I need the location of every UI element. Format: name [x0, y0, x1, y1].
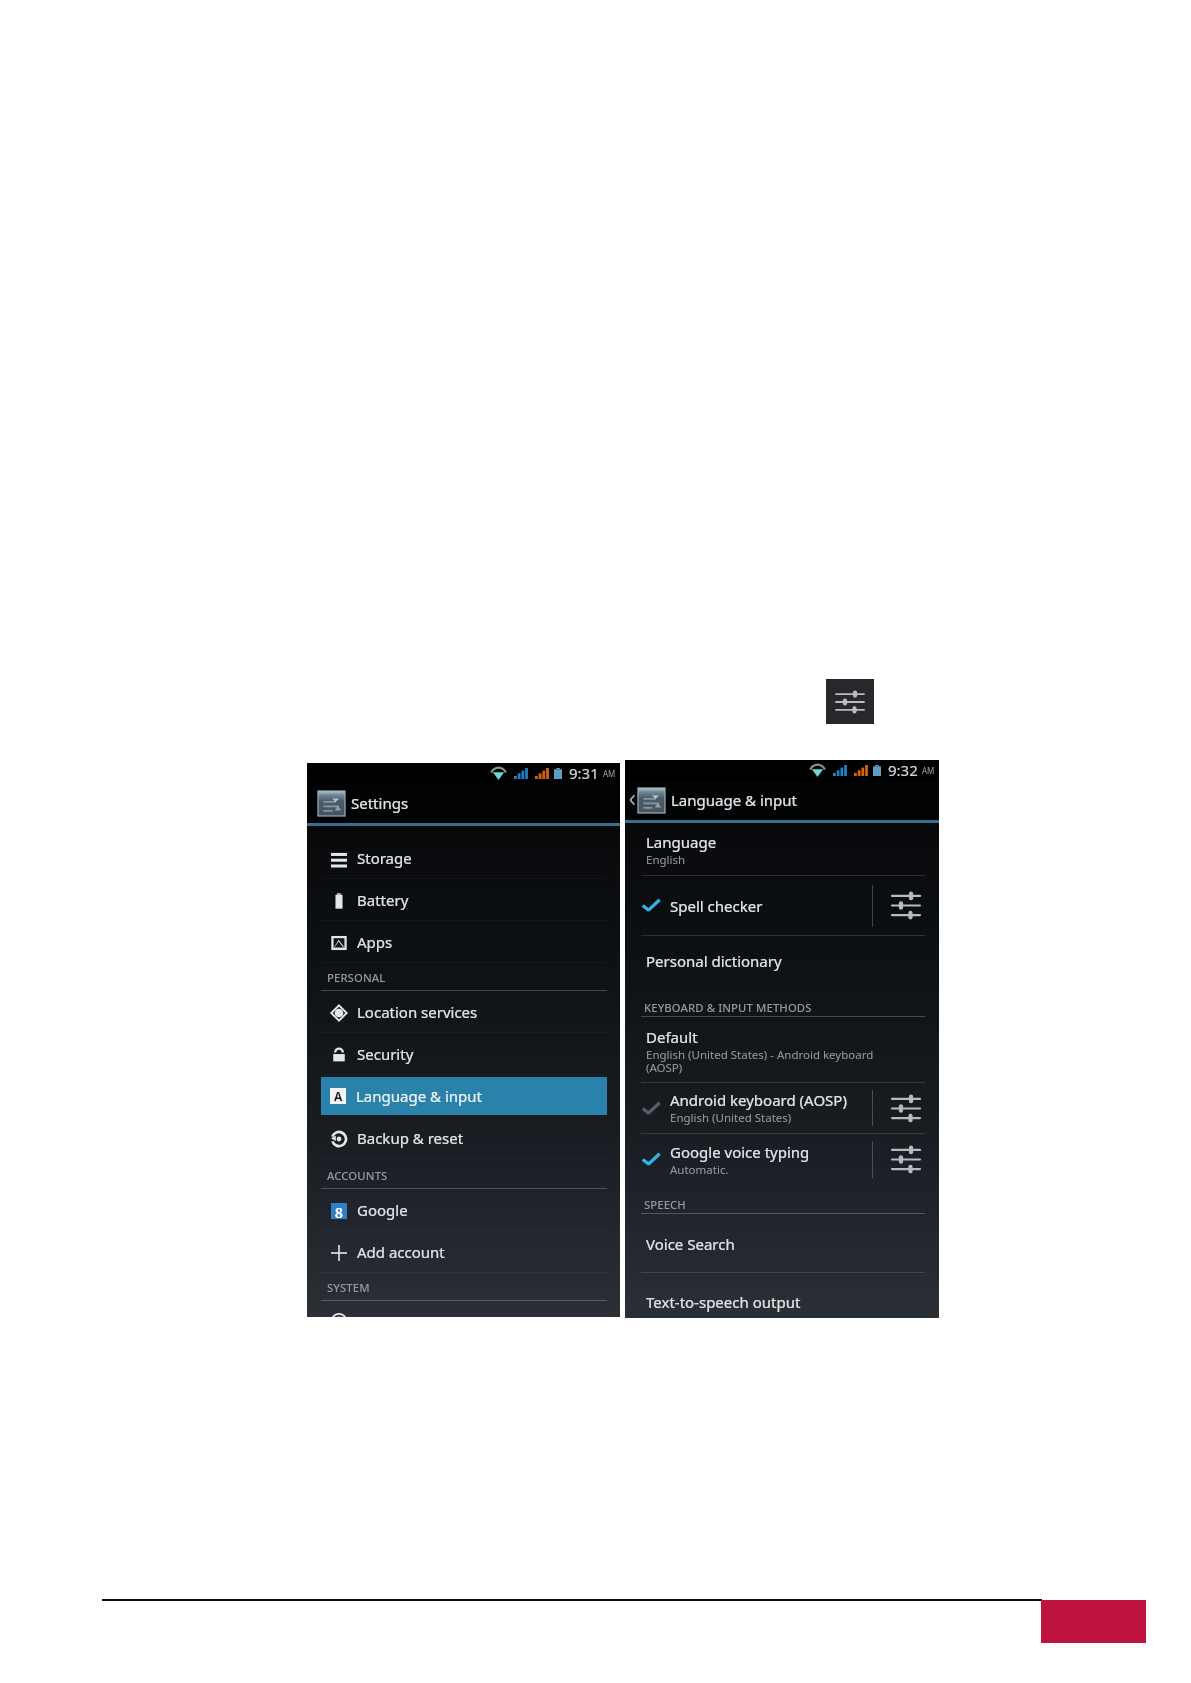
button[interactable]: Android keyboard (AOSP): [625, 1083, 872, 1133]
button[interactable]: Text-to-speech output: [625, 1273, 939, 1318]
staticText: Storage: [357, 848, 412, 868]
staticText: 8: [335, 1203, 343, 1219]
staticText: Language: [646, 832, 717, 852]
staticText: Add account: [357, 1242, 445, 1262]
staticText: Apps: [357, 932, 393, 952]
staticText: Voice Search: [646, 1234, 735, 1254]
button[interactable]: Settings for Google voice typing: [873, 1134, 939, 1185]
staticText: Backup & reset: [357, 1128, 464, 1148]
button[interactable]: Spell checker: [625, 876, 872, 935]
button[interactable]: Battery: [307, 879, 620, 921]
staticText: SPEECH: [644, 1197, 686, 1212]
staticText: Automatic.: [670, 1162, 729, 1178]
staticText: SYSTEM: [327, 1280, 370, 1295]
button[interactable]: 8: [307, 1189, 620, 1231]
staticText: Personal dictionary: [646, 951, 782, 971]
staticText: Settings: [351, 793, 409, 813]
staticText: KEYBOARD & INPUT METHODS: [644, 1000, 812, 1015]
button[interactable]: Language: [625, 823, 939, 875]
staticText: Battery: [357, 890, 409, 910]
staticText: Text-to-speech output: [646, 1292, 801, 1312]
staticText: ACCOUNTS: [327, 1168, 388, 1183]
staticText: Android keyboard (AOSP): [670, 1090, 847, 1110]
button[interactable]: Language & input: [638, 780, 797, 820]
button[interactable]: Location services: [307, 991, 620, 1033]
staticText: Google voice typing: [670, 1142, 810, 1162]
button[interactable]: Personal dictionary: [625, 936, 939, 985]
staticText: English (United States): [670, 1110, 792, 1126]
button[interactable]: Google voice typing: [625, 1134, 872, 1185]
button[interactable]: Add account: [307, 1231, 620, 1273]
staticText: 9:31: [569, 763, 599, 783]
button[interactable]: Settings: [318, 783, 409, 823]
staticText: English: [646, 852, 686, 868]
staticText: 9:32: [888, 760, 918, 780]
staticText: Language & input: [671, 790, 797, 810]
button[interactable]: Date & time: [307, 1313, 620, 1317]
button[interactable]: Navigate up: [625, 780, 638, 820]
staticText: Spell checker: [670, 896, 763, 916]
button[interactable]: A: [321, 1077, 607, 1115]
staticText: Default: [646, 1027, 698, 1047]
button[interactable]: Input method settings: [826, 679, 874, 724]
button[interactable]: Settings for Spell checker: [873, 876, 939, 935]
staticText: English (United States) - Android keyboa…: [646, 1047, 874, 1076]
button[interactable]: Storage: [307, 837, 620, 879]
staticText: AM: [603, 768, 616, 779]
button[interactable]: Voice Search: [625, 1214, 939, 1272]
staticText: PERSONAL: [327, 970, 386, 985]
button[interactable]: Security: [307, 1033, 620, 1075]
staticText: Date & time: [357, 1313, 441, 1317]
button[interactable]: Default: [625, 1017, 939, 1082]
staticText: Language & input: [356, 1086, 482, 1106]
staticText: A: [334, 1088, 343, 1104]
button[interactable]: Settings for Android keyboard (AOSP): [873, 1083, 939, 1133]
button[interactable]: Apps: [307, 921, 620, 963]
button[interactable]: Backup & reset: [307, 1117, 620, 1159]
staticText: Google: [357, 1200, 408, 1220]
staticText: Location services: [357, 1002, 478, 1022]
staticText: AM: [922, 765, 935, 776]
staticText: Security: [357, 1044, 414, 1064]
